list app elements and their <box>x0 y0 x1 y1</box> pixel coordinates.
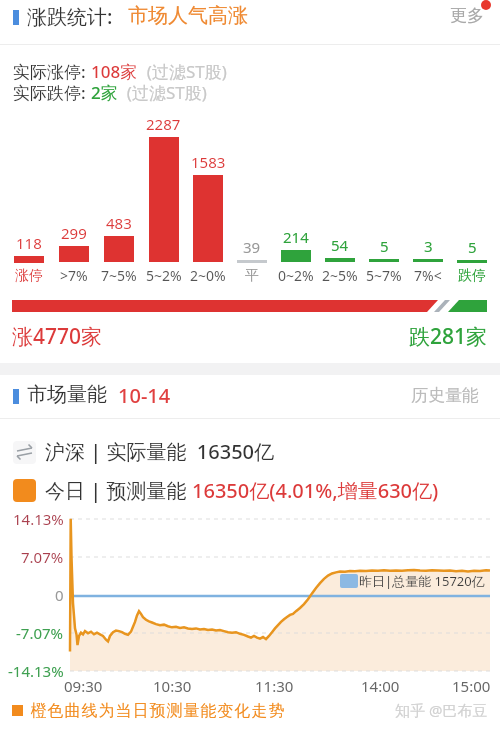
staticText: 历史量能 <box>411 385 479 406</box>
staticText: 39 <box>243 237 261 257</box>
staticText: 09:30 <box>64 676 103 696</box>
staticText: (过滤ST股) <box>118 81 207 104</box>
staticText: -14.13% <box>8 661 64 681</box>
staticText: 市场量能 <box>27 382 107 407</box>
staticText: 实际跌停: <box>13 81 91 104</box>
staticText: 7.07% <box>21 547 64 567</box>
staticText: 2~0% <box>190 266 226 285</box>
staticText: 跌281家 <box>409 322 488 351</box>
staticText: 14:00 <box>361 676 400 696</box>
staticText: 0 <box>55 585 64 605</box>
staticText: 知乎 @巴布豆 <box>395 700 488 720</box>
staticText: 5~7% <box>366 266 402 285</box>
staticText: 7~5% <box>101 266 137 285</box>
staticText: 214 <box>283 227 309 247</box>
staticText: 平 <box>245 267 259 285</box>
staticText: 2287 <box>146 114 181 134</box>
staticText: 涨停 <box>15 267 43 285</box>
staticText: 1583 <box>191 152 226 172</box>
staticText: 3 <box>424 236 433 256</box>
staticText: 跌停 <box>458 267 486 285</box>
staticText: 10:30 <box>153 676 192 696</box>
staticText: 涨跌统计: <box>27 3 113 30</box>
staticText: (过滤ST股) <box>138 60 227 83</box>
staticText: 108家 <box>91 60 138 83</box>
staticText: 16350亿(4.01%,增量630亿) <box>192 477 439 504</box>
staticText: 2~5% <box>322 266 358 285</box>
staticText: 沪深 | 实际量能 16350亿 <box>45 438 275 465</box>
button[interactable]: 更多 <box>450 5 484 26</box>
staticText: 54 <box>331 235 349 255</box>
staticText: 5 <box>380 236 389 256</box>
staticText: 14.13% <box>13 509 64 529</box>
staticText: 483 <box>106 213 132 233</box>
staticText: 2家 <box>91 81 118 104</box>
staticText: 299 <box>61 223 87 243</box>
staticText: 5~2% <box>146 266 182 285</box>
staticText: 今日 | 预测量能 <box>45 477 192 504</box>
staticText: >7% <box>60 266 88 285</box>
staticText: 橙色曲线为当日预测量能变化走势 <box>30 701 285 721</box>
staticText: 11:30 <box>255 676 294 696</box>
staticText: 7%< <box>414 266 442 285</box>
staticText: 涨4770家 <box>12 322 103 351</box>
staticText: -7.07% <box>16 623 64 643</box>
staticText: 118 <box>16 233 42 253</box>
staticText: 10-14 <box>118 382 171 409</box>
staticText: 0~2% <box>278 266 314 285</box>
staticText: 昨日|总量能 15720亿 <box>359 572 485 590</box>
staticText: 15:00 <box>452 676 491 696</box>
staticText: 实际涨停: <box>13 60 91 83</box>
staticText: 5 <box>468 237 477 257</box>
button[interactable]: 历史量能 <box>411 385 479 406</box>
staticText: 更多 <box>450 5 484 26</box>
staticText: 市场人气高涨 <box>128 3 248 28</box>
